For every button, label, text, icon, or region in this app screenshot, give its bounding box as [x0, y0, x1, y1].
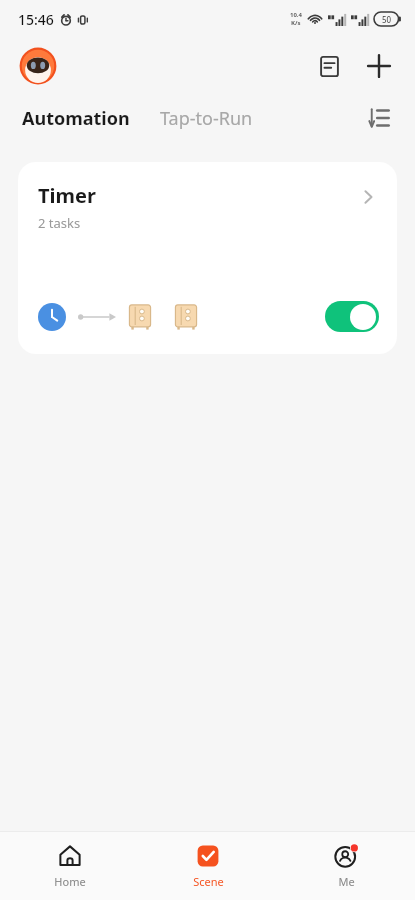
staticText: 50: [382, 14, 392, 25]
button[interactable]: Sort: [359, 98, 399, 138]
button[interactable]: Add: [359, 46, 399, 86]
button[interactable]: Scene: [139, 837, 277, 895]
staticText: Timer: [38, 182, 96, 209]
button[interactable]: Tap-to-Run: [156, 102, 257, 135]
button[interactable]: Enable automation: [325, 301, 379, 332]
button[interactable]: Me: [277, 837, 415, 895]
button[interactable]: Logs: [309, 46, 349, 86]
staticText: Me: [338, 874, 355, 889]
button[interactable]: Home: [0, 837, 139, 895]
button[interactable]: Profile avatar: [16, 44, 60, 88]
staticText: K/s: [291, 19, 301, 27]
staticText: Automation: [22, 106, 130, 131]
button[interactable]: Automation: [18, 102, 134, 135]
staticText: 15:46: [18, 10, 54, 29]
staticText: Scene: [193, 874, 224, 889]
staticText: Home: [54, 874, 86, 889]
button[interactable]: Timer: [18, 162, 397, 354]
staticText: 2 tasks: [38, 214, 81, 232]
staticText: 10.4: [290, 11, 302, 19]
staticText: Tap-to-Run: [160, 106, 253, 131]
